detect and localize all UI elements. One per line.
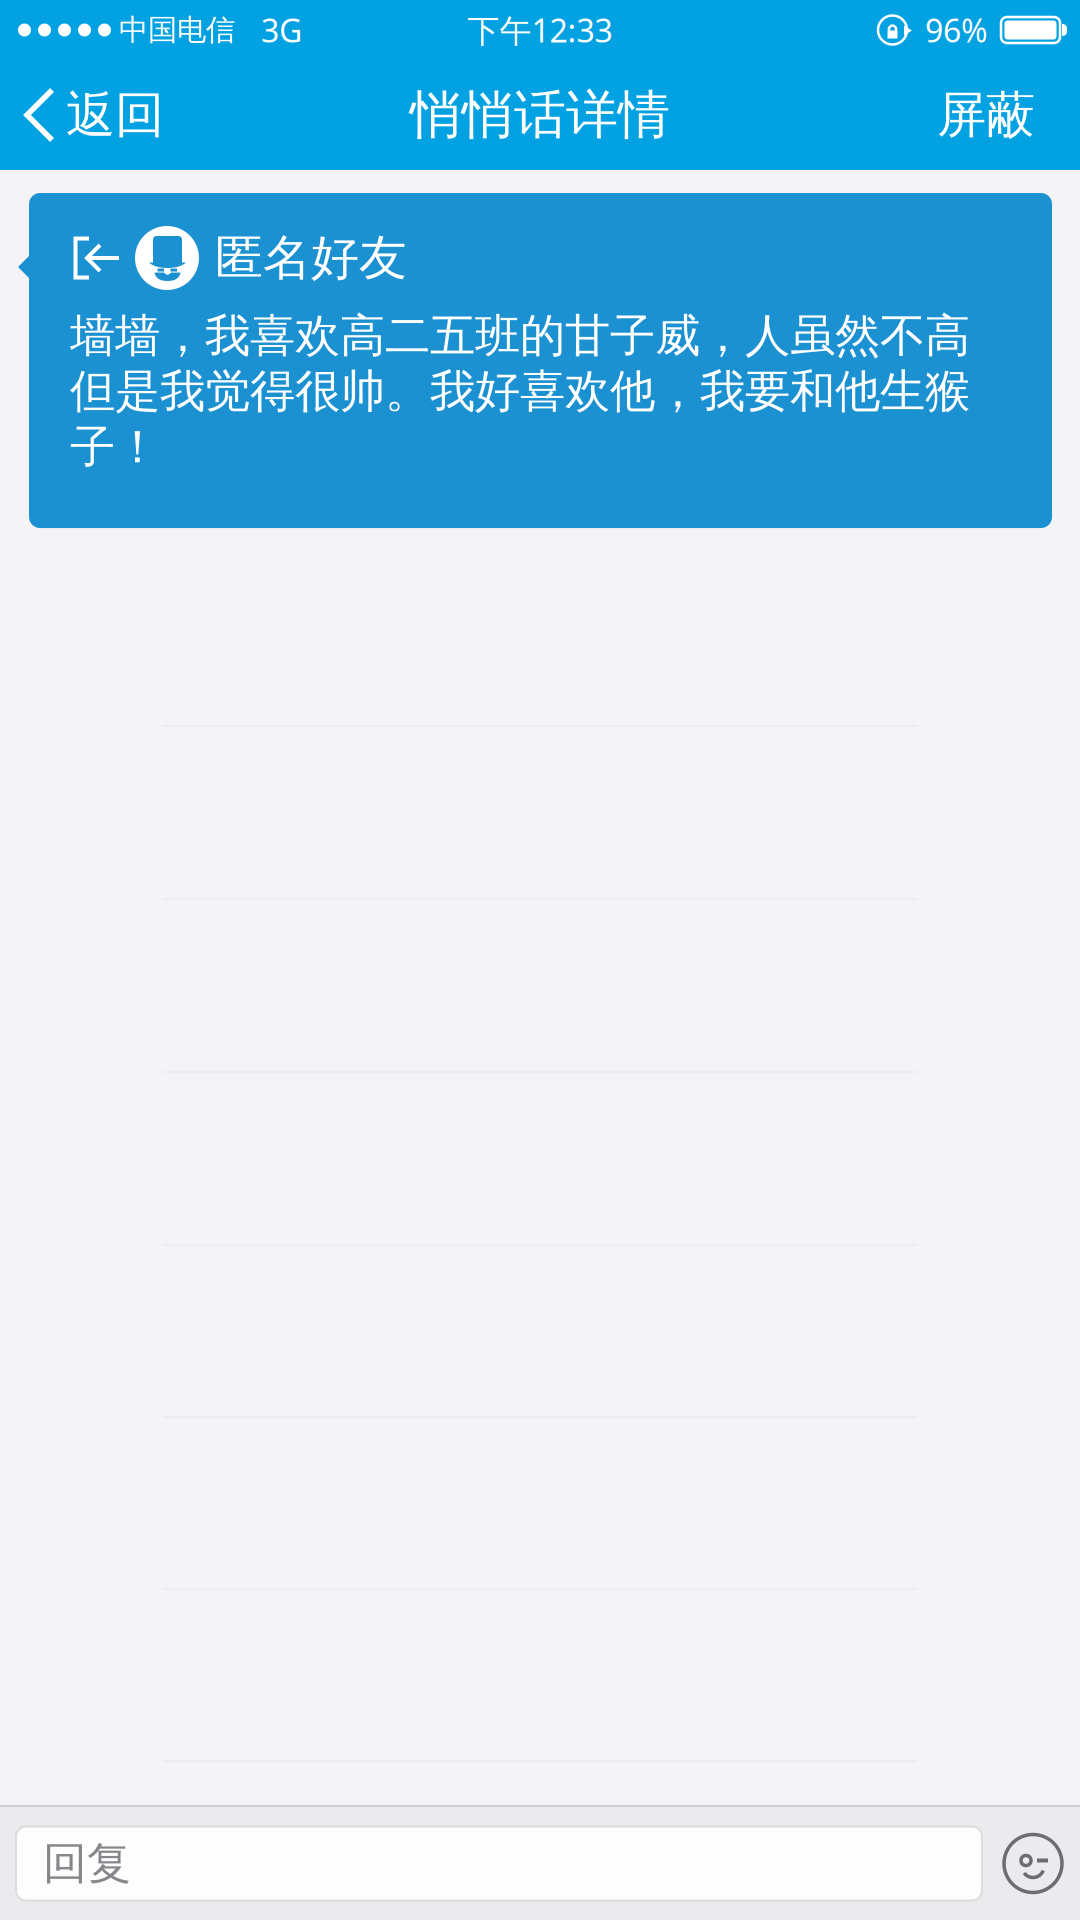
button[interactable]: 回复: [0, 1826, 982, 1900]
staticText: 回复: [43, 1836, 131, 1890]
staticText: 屏蔽: [937, 85, 1035, 145]
staticText: 匿名好友: [215, 228, 407, 287]
button[interactable]: 屏蔽: [907, 60, 1080, 170]
button[interactable]: 匿名好友: [0, 170, 1080, 528]
staticText: 3G: [261, 9, 302, 51]
staticText: 下午12:33: [467, 9, 612, 51]
staticText: 中国电信: [119, 12, 235, 48]
staticText: 96%: [925, 9, 988, 51]
button[interactable]: 返回: [0, 60, 188, 170]
staticText: 悄悄话详情: [410, 83, 670, 147]
button[interactable]: Emoji: [982, 1834, 1080, 1892]
staticText: 返回: [66, 85, 164, 145]
staticText: 墙墙，我喜欢高二五班的甘子威，人虽然不高但是我觉得很帅。我好喜欢他，我要和他生猴…: [70, 308, 970, 475]
